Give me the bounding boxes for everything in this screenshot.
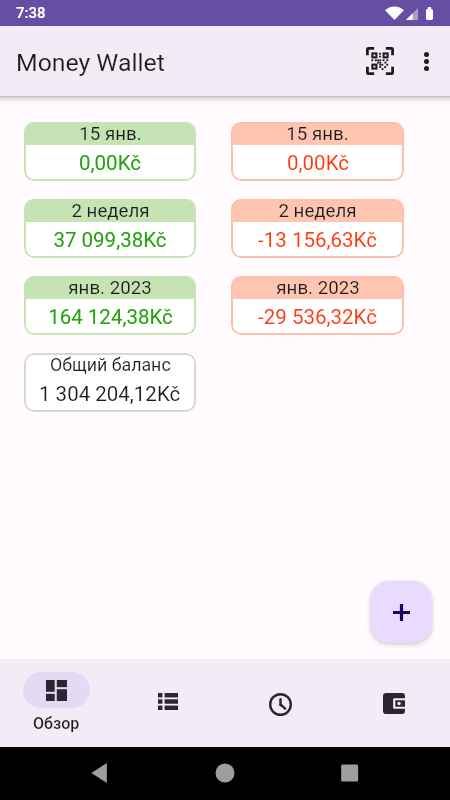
staticText: янв. 2023: [68, 277, 152, 299]
button[interactable]: 15 янв.: [231, 122, 404, 181]
staticText: 0,00Kč: [79, 151, 141, 175]
button[interactable]: More options: [403, 40, 445, 82]
staticText: 15 янв.: [286, 123, 349, 145]
button[interactable]: Обзор: [0, 659, 112, 747]
button[interactable]: 2 неделя: [24, 199, 196, 258]
button[interactable]: янв. 2023: [231, 276, 404, 335]
staticText: 0,00Kč: [287, 151, 349, 175]
staticText: 1 304 204,12Kč: [39, 382, 181, 406]
staticText: Money Wallet: [16, 48, 165, 77]
button[interactable]: янв. 2023: [24, 276, 196, 335]
button[interactable]: Add transaction: [370, 581, 432, 643]
staticText: Обзор: [33, 714, 80, 733]
staticText: 2 неделя: [278, 200, 357, 222]
staticText: 15 янв.: [79, 123, 142, 145]
staticText: 37 099,38Kč: [53, 228, 167, 252]
button[interactable]: Scan QR code: [357, 38, 403, 84]
button[interactable]: 2 неделя: [231, 199, 404, 258]
button[interactable]: History: [224, 659, 337, 747]
staticText: Общий баланс: [50, 354, 171, 375]
button[interactable]: Transactions: [112, 659, 224, 747]
button[interactable]: Общий баланс: [24, 353, 196, 412]
staticText: 2 неделя: [71, 200, 150, 222]
staticText: -29 536,32Kč: [258, 305, 377, 329]
button[interactable]: 15 янв.: [24, 122, 196, 181]
staticText: янв. 2023: [276, 277, 360, 299]
staticText: 164 124,38Kč: [48, 305, 173, 329]
staticText: -13 156,63Kč: [258, 228, 377, 252]
button[interactable]: Accounts: [337, 659, 450, 747]
staticText: 7:38: [16, 4, 46, 22]
